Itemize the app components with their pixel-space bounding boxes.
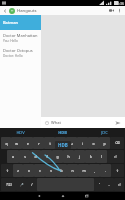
button[interactable]: What [51, 120, 114, 125]
button[interactable]: q [1, 137, 11, 149]
button[interactable]: 🎤 [16, 178, 27, 191]
staticText: ⏎ [118, 183, 121, 187]
button[interactable]: a [7, 150, 19, 163]
button[interactable]: ' [94, 178, 104, 191]
button[interactable]: e [22, 137, 33, 149]
button[interactable]: g [52, 150, 63, 163]
staticText: ⌫ [115, 141, 120, 145]
button[interactable]: Home [56, 192, 70, 200]
staticText: r [38, 141, 40, 146]
staticText: ⇧ [116, 169, 119, 173]
button[interactable]: HDB [41, 128, 83, 136]
staticText: ' [99, 182, 100, 187]
staticText: ⏎ [114, 155, 117, 159]
staticText: Batman [3, 20, 19, 25]
staticText: Doctor Octopus [3, 48, 33, 53]
staticText: i [82, 141, 83, 146]
button[interactable]: JDC [83, 128, 125, 136]
staticText: v [50, 168, 52, 173]
button[interactable]: t [44, 137, 55, 149]
staticText: . [105, 168, 106, 173]
button[interactable]: HDV [0, 128, 41, 136]
staticText: HDB [58, 142, 68, 148]
button[interactable]: i [77, 137, 88, 149]
button[interactable]: Batman [0, 15, 41, 30]
staticText: e [27, 141, 29, 146]
staticText: d [34, 154, 37, 159]
staticText: h [67, 154, 70, 159]
staticText: c [39, 168, 41, 173]
staticText: u [70, 141, 73, 146]
button[interactable]: m [78, 164, 89, 177]
button[interactable]: c [34, 164, 45, 177]
button[interactable]: b [56, 164, 67, 177]
staticText: w [15, 141, 18, 146]
button[interactable]: x [23, 164, 34, 177]
button[interactable]: ⏎ [114, 178, 124, 191]
button[interactable]: Navigate up [2, 8, 8, 14]
staticText: , [94, 168, 95, 173]
staticText: s [24, 154, 26, 159]
button[interactable]: Doctor Octopus [0, 45, 41, 60]
button[interactable]: Video call [108, 7, 115, 14]
staticText: x [28, 168, 30, 173]
staticText: JDC [101, 130, 108, 135]
button[interactable]: Back [32, 192, 46, 200]
staticText: p [103, 141, 106, 146]
button[interactable]: r [33, 137, 44, 149]
staticText: You: Hello [3, 39, 18, 43]
staticText: / [31, 182, 33, 187]
button[interactable]: / [27, 178, 37, 191]
button[interactable]: l [96, 150, 107, 163]
button[interactable]: y [55, 137, 66, 149]
button[interactable]: d [30, 150, 41, 163]
staticText: t [49, 141, 51, 146]
staticText: Doctor Manhattan [3, 33, 38, 38]
staticText: o [92, 141, 95, 146]
button[interactable]: p [99, 137, 110, 149]
button[interactable]: o [88, 137, 99, 149]
staticText: l [101, 154, 102, 159]
button[interactable]: u [66, 137, 77, 149]
staticText: HDV [16, 130, 25, 135]
staticText: z [17, 168, 19, 173]
staticText: g [56, 154, 59, 159]
button[interactable]: . [100, 164, 111, 177]
staticText: 🎤 [19, 183, 24, 187]
staticText: 11:36 [115, 1, 124, 6]
button[interactable]: Doctor Manhattan [0, 30, 41, 45]
button[interactable]: ?123 [1, 178, 16, 191]
button[interactable]: More options [116, 7, 123, 14]
button[interactable]: j [74, 150, 85, 163]
button[interactable]: ⏎ [107, 150, 124, 163]
staticText: n [71, 168, 74, 173]
button[interactable]: k [85, 150, 96, 163]
button[interactable]: Recent apps [80, 192, 94, 200]
staticText: y [60, 141, 62, 146]
staticText: b [60, 168, 63, 173]
staticText: j [79, 154, 80, 159]
button[interactable]: Send [114, 119, 122, 127]
button[interactable]: , [89, 164, 100, 177]
button[interactable]: - [104, 178, 114, 191]
button[interactable]: v [45, 164, 56, 177]
staticText: m [82, 168, 86, 173]
staticText: - [108, 182, 110, 187]
button[interactable]: ⇧ [1, 164, 13, 177]
staticText: Hangouts [17, 8, 37, 14]
staticText: a [12, 154, 14, 159]
button[interactable]: ⌫ [110, 137, 124, 149]
button[interactable]: n [67, 164, 78, 177]
staticText: Doctor: Hello [3, 54, 23, 58]
button[interactable]: ⇧ [111, 164, 124, 177]
button[interactable]: w [11, 137, 22, 149]
button[interactable]: s [19, 150, 30, 163]
button[interactable]: z [13, 164, 23, 177]
button[interactable]: Insert emoji [44, 120, 49, 125]
staticText: ?123 [6, 183, 12, 187]
staticText: f [46, 154, 48, 159]
button[interactable]: h [63, 150, 74, 163]
staticText: HDB [58, 130, 67, 135]
button[interactable]: f [41, 150, 52, 163]
